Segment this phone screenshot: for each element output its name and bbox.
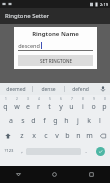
button[interactable]: Home <box>36 166 73 183</box>
staticText: descend <box>18 42 40 49</box>
button[interactable]: 3 <box>22 96 33 113</box>
button[interactable]: Recents <box>73 166 110 183</box>
button[interactable]: descend <box>18 42 93 51</box>
staticText: q <box>3 102 8 112</box>
staticText: m <box>86 131 93 141</box>
staticText: l <box>99 116 101 126</box>
button[interactable]: 7 <box>66 96 77 113</box>
staticText: dense <box>41 86 56 93</box>
staticText: j <box>77 116 79 126</box>
staticText: 5 <box>49 97 51 101</box>
staticText: ?123 <box>4 148 14 154</box>
button[interactable]: f <box>39 113 50 128</box>
button[interactable]: n <box>73 128 84 143</box>
staticText: 2:19 <box>100 2 108 7</box>
button[interactable]: Voice input <box>96 83 110 95</box>
staticText: i <box>82 102 84 112</box>
button[interactable]: x <box>28 128 40 143</box>
button[interactable]: 4 <box>33 96 44 113</box>
button[interactable]: c <box>40 128 51 143</box>
button[interactable]: b <box>62 128 73 143</box>
button[interactable]: h <box>61 113 72 128</box>
button[interactable]: 5 <box>44 96 55 113</box>
staticText: g <box>53 116 58 126</box>
staticText: b <box>65 131 70 141</box>
button[interactable]: Back <box>0 166 36 183</box>
staticText: u <box>69 102 74 112</box>
staticText: y <box>59 102 63 112</box>
button[interactable]: l <box>94 113 105 128</box>
staticText: Ringtone Setter <box>5 12 49 20</box>
button[interactable]: , <box>17 143 26 159</box>
button[interactable]: deemed <box>0 83 32 95</box>
staticText: t <box>48 102 51 112</box>
button[interactable]: j <box>72 113 83 128</box>
staticText: 6 <box>60 97 62 101</box>
staticText: 2 <box>16 97 18 101</box>
button[interactable]: 9 <box>88 96 99 113</box>
button[interactable]: SET RINGTONE <box>18 55 93 66</box>
staticText: 0 <box>104 97 106 101</box>
staticText: d <box>31 116 36 126</box>
staticText: z <box>20 131 24 141</box>
staticText: 4 <box>38 97 40 101</box>
button[interactable]: 8 <box>77 96 88 113</box>
button[interactable]: ?123 <box>0 143 17 159</box>
staticText: r <box>37 102 40 112</box>
staticText: s <box>21 116 25 126</box>
staticText: k <box>87 116 91 126</box>
button[interactable]: s <box>17 113 28 128</box>
staticText: SET RINGTONE <box>40 58 72 64</box>
staticText: 3 <box>27 97 29 101</box>
staticText: o <box>91 102 96 112</box>
staticText: c <box>44 131 48 141</box>
button[interactable]: m <box>84 128 95 143</box>
staticText: v <box>55 131 59 141</box>
staticText: a <box>9 116 13 126</box>
button[interactable]: Backspace <box>95 128 110 143</box>
staticText: defend <box>72 86 89 93</box>
staticText: f <box>43 116 46 126</box>
button[interactable]: 0 <box>99 96 110 113</box>
staticText: n <box>76 131 81 141</box>
button[interactable]: defend <box>65 83 96 95</box>
staticText: x <box>32 131 36 141</box>
staticText: w <box>14 102 20 112</box>
staticText: p <box>102 102 107 112</box>
button[interactable]: a <box>5 113 17 128</box>
staticText: h <box>64 116 69 126</box>
staticText: 8 <box>82 97 84 101</box>
button[interactable]: 6 <box>55 96 66 113</box>
button[interactable]: 2 <box>11 96 22 113</box>
button[interactable]: v <box>51 128 62 143</box>
button[interactable]: z <box>16 128 28 143</box>
button[interactable]: Shift <box>0 128 16 143</box>
button[interactable]: dense <box>33 83 64 95</box>
staticText: . <box>85 147 87 155</box>
button[interactable]: k <box>83 113 94 128</box>
staticText: deemed <box>6 86 26 93</box>
staticText: e <box>26 102 30 112</box>
staticText: 1 <box>5 97 7 101</box>
staticText: 9 <box>93 97 95 101</box>
staticText: 7 <box>71 97 73 101</box>
button[interactable]: 1 <box>0 96 11 113</box>
staticText: , <box>21 147 23 155</box>
button[interactable]: g <box>50 113 61 128</box>
button[interactable]: . <box>81 143 90 159</box>
staticText: Ringtone Name <box>32 30 79 38</box>
button[interactable]: d <box>28 113 39 128</box>
button[interactable]: Enter <box>96 147 105 156</box>
